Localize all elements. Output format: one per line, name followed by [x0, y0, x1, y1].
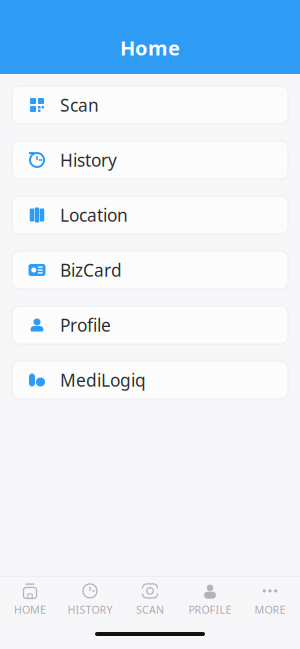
staticText: SCAN — [136, 602, 164, 617]
button[interactable]: BizCard — [12, 251, 288, 289]
staticText: MediLogiq — [60, 368, 146, 391]
staticText: Location — [60, 203, 128, 226]
button[interactable]: Scan — [12, 86, 288, 124]
button[interactable]: Profile — [12, 306, 288, 344]
staticText: BizCard — [60, 258, 122, 281]
staticText: HISTORY — [67, 602, 112, 617]
staticText: History — [60, 148, 117, 171]
staticText: HOME — [14, 602, 46, 617]
staticText: Home — [120, 34, 180, 61]
staticText: Scan — [60, 93, 99, 116]
staticText: PROFILE — [188, 602, 231, 617]
button[interactable]: SCAN — [120, 575, 180, 621]
staticText: Profile — [60, 313, 111, 336]
button[interactable]: MediLogiq — [12, 361, 288, 399]
button[interactable]: HISTORY — [60, 575, 120, 621]
button[interactable]: History — [12, 141, 288, 179]
button[interactable]: MORE — [240, 575, 300, 621]
button[interactable]: PROFILE — [180, 575, 240, 621]
button[interactable]: HOME — [0, 575, 60, 621]
staticText: MORE — [254, 602, 285, 617]
button[interactable]: Location — [12, 196, 288, 234]
